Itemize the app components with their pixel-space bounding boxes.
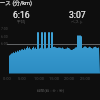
staticText: 時間 (時：分：秒) — [37, 89, 64, 93]
staticText: 15:00 — [49, 76, 59, 81]
staticText: 20:00 — [64, 76, 74, 81]
staticText: 7:00 — [1, 27, 8, 31]
staticText: 3:07 — [69, 10, 86, 20]
staticText: 5:00 — [18, 76, 26, 81]
staticText: 25:00 — [80, 76, 90, 81]
staticText: 6:30 — [1, 35, 8, 39]
staticText: 平均 — [17, 19, 25, 24]
staticText: 6:00 — [1, 42, 8, 46]
staticText: ペース (分/km) — [0, 0, 32, 7]
staticText: ベスト — [71, 19, 84, 24]
staticText: 6:16 — [13, 10, 30, 20]
staticText: 10:00 — [34, 76, 44, 81]
staticText: 0:00 — [3, 76, 11, 81]
